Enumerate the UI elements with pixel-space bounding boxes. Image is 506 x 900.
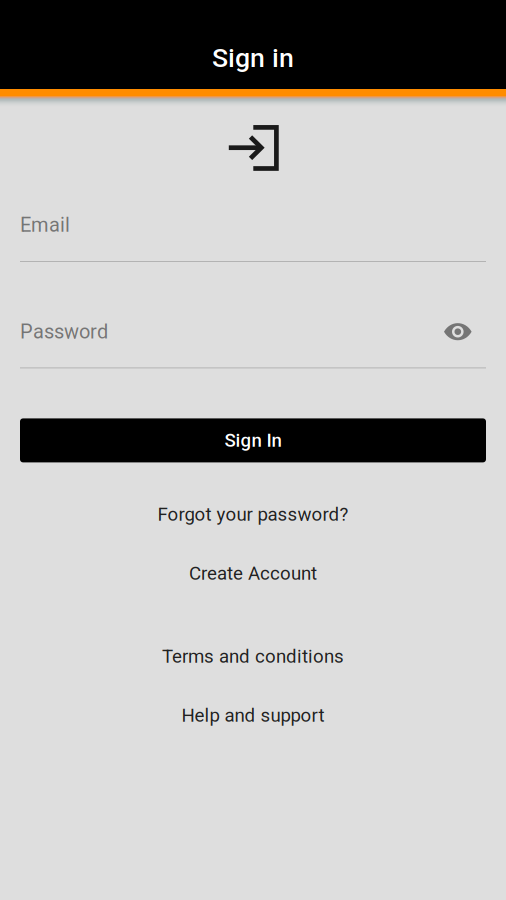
button[interactable]: Forgot your password? [0, 499, 506, 529]
button[interactable]: Help and support [0, 700, 506, 730]
button[interactable]: Create Account [0, 558, 506, 588]
staticText: Create Account [189, 562, 317, 584]
staticText: Password [20, 320, 108, 343]
staticText: Help and support [181, 704, 324, 726]
button[interactable]: Sign In [20, 418, 486, 462]
button[interactable]: Email [20, 216, 486, 262]
staticText: Terms and conditions [162, 645, 344, 667]
button[interactable]: Show password [444, 322, 472, 341]
button[interactable]: Password [20, 323, 108, 341]
staticText: Sign In [224, 429, 281, 451]
button[interactable]: Terms and conditions [0, 641, 506, 671]
staticText: Email [20, 213, 70, 237]
staticText: Sign in [212, 42, 294, 74]
staticText: Forgot your password? [157, 503, 348, 525]
